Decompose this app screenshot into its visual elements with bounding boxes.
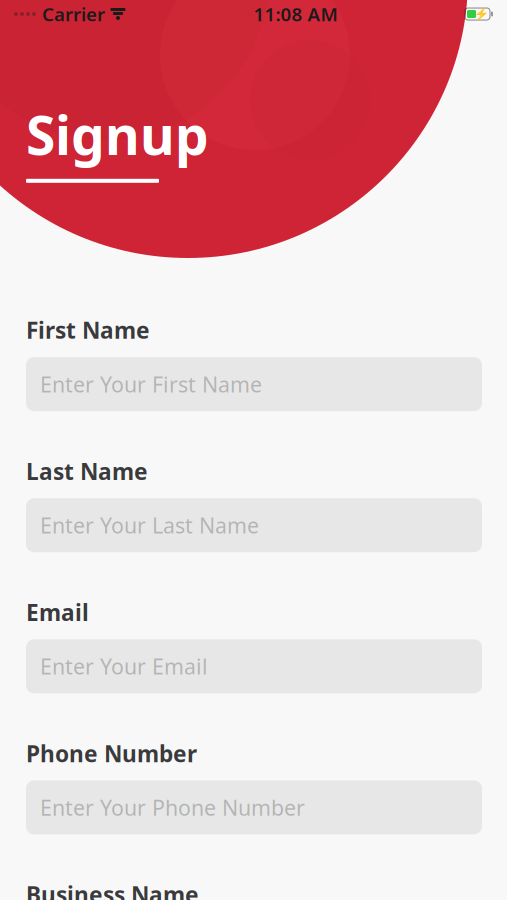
button[interactable]: Enter Your Phone Number bbox=[26, 780, 482, 834]
staticText: Enter Your Last Name bbox=[40, 511, 259, 539]
staticText: Phone Number bbox=[26, 738, 197, 768]
button[interactable]: Enter Your Email bbox=[26, 639, 482, 693]
staticText: Email bbox=[26, 597, 89, 627]
button[interactable]: Enter Your First Name bbox=[26, 357, 482, 411]
staticText: Enter Your First Name bbox=[40, 370, 262, 398]
staticText: Business Name bbox=[26, 879, 199, 900]
staticText: Last Name bbox=[26, 456, 148, 486]
staticText: Enter Your Phone Number bbox=[40, 793, 305, 821]
staticText: Signup bbox=[26, 99, 209, 170]
button[interactable]: Enter Your Last Name bbox=[26, 498, 482, 552]
staticText: First Name bbox=[26, 315, 150, 345]
staticText: Enter Your Email bbox=[40, 652, 208, 680]
staticText: Carrier bbox=[42, 2, 105, 26]
staticText: ⚡ bbox=[474, 7, 489, 21]
staticText: 11:08 AM bbox=[253, 2, 337, 26]
